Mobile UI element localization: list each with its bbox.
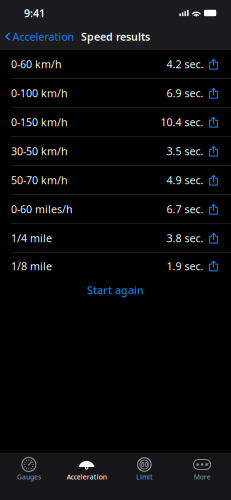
staticText: 30-50 km/h <box>11 144 68 158</box>
staticText: 4.9 sec. <box>166 173 203 187</box>
button[interactable]: 60 <box>115 454 173 500</box>
staticText: 50-70 km/h <box>11 173 68 187</box>
button[interactable]: 30-50 km/h <box>0 137 231 166</box>
button[interactable]: 1/8 mile <box>0 253 231 279</box>
staticText: 60 <box>140 460 148 469</box>
staticText: Acceleration <box>13 29 75 44</box>
staticText: 0-100 km/h <box>11 86 68 100</box>
staticText: 6.7 sec. <box>166 202 203 216</box>
staticText: Speed results <box>81 29 150 44</box>
staticText: 6.9 sec. <box>166 86 203 100</box>
staticText: 1.9 sec. <box>166 259 203 273</box>
staticText: More <box>194 472 211 481</box>
staticText: Gauges <box>17 472 41 481</box>
staticText: 9:41 <box>24 6 45 20</box>
staticText: 0-60 km/h <box>11 57 62 71</box>
staticText: 0-60 miles/h <box>11 202 73 216</box>
staticText: 1/8 mile <box>11 259 52 273</box>
staticText: 10.4 sec. <box>160 115 203 129</box>
button[interactable]: Gauges <box>0 454 58 500</box>
staticText: Limit <box>136 472 153 481</box>
staticText: 0-150 km/h <box>11 115 68 129</box>
staticText: 3.5 sec. <box>166 144 203 158</box>
button[interactable]: 0-60 miles/h <box>0 195 231 224</box>
staticText: 4.2 sec. <box>166 57 203 71</box>
button[interactable]: 0-150 km/h <box>0 108 231 137</box>
button[interactable]: Acceleration <box>58 454 116 500</box>
staticText: 1/4 mile <box>11 231 52 245</box>
button[interactable]: 0-100 km/h <box>0 79 231 108</box>
button[interactable]: Start again <box>0 279 231 301</box>
button[interactable]: 0-60 km/h <box>0 50 231 79</box>
staticText: 3.8 sec. <box>166 231 203 245</box>
button[interactable]: Acceleration <box>0 26 75 47</box>
button[interactable]: 50-70 km/h <box>0 166 231 195</box>
staticText: Acceleration <box>67 472 107 481</box>
button[interactable]: 1/4 mile <box>0 224 231 253</box>
button[interactable]: More <box>173 454 231 500</box>
staticText: Start again <box>87 283 144 297</box>
